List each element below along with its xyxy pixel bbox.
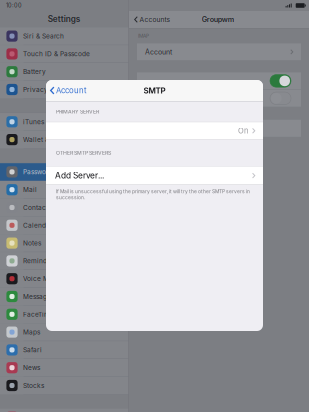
button[interactable]: Add Server... [46,167,263,185]
button[interactable]: Maps [0,323,128,341]
staticText: Siri & Search [23,32,64,40]
button[interactable]: Contacts [0,199,128,217]
button[interactable]: Privacy [0,81,128,99]
staticText: Account [56,86,87,95]
staticText: Calendar [23,221,52,229]
button[interactable]: Siri & Search [0,27,128,45]
staticText: Wallet & Apple Pay [23,136,84,143]
button[interactable]: Notes [0,234,128,252]
staticText: Account [145,48,172,56]
staticText: Notes [23,239,41,247]
button[interactable]: iTunes & App Store [0,113,128,131]
staticText: SMTP [143,86,165,95]
button[interactable]: Mail [0,181,128,199]
staticText: Messages [23,292,54,300]
button[interactable]: Account [46,80,87,101]
staticText: Contacts [23,203,51,211]
staticText: News [23,364,40,372]
button[interactable]: Passwords & Accounts [0,163,128,181]
staticText: On [238,126,248,135]
staticText: Stocks [23,381,44,389]
staticText: Mail [23,186,37,194]
button[interactable]: Messages [0,288,128,306]
button[interactable]: Calendar [0,217,128,234]
staticText: Add Server... [55,171,104,181]
button[interactable]: Music [0,408,128,412]
button[interactable]: Voice Memos [0,270,128,288]
staticText: If Mail is unsuccessful using the primar… [56,188,250,200]
staticText: Settings [48,14,81,24]
staticText: Touch ID & Passcode [23,50,90,58]
button[interactable]: Accounts [129,11,170,28]
button[interactable]: Reminders [0,252,128,270]
button[interactable]: Safari [0,341,128,359]
staticText: Maps [23,328,40,336]
staticText: OTHER SMTP SERVERS [56,150,111,156]
staticText: 10:00 [6,2,22,9]
staticText: IMAP [138,33,149,39]
staticText: Passwords & Accounts [23,168,93,176]
button[interactable]: Touch ID & Passcode [0,45,128,63]
staticText: Safari [23,346,42,354]
button[interactable]: Wallet & Apple Pay [0,131,128,149]
staticText: Accounts [139,15,170,24]
button[interactable]: FaceTime [0,306,128,323]
button[interactable]: Stocks [0,377,128,395]
button[interactable]: News [0,359,128,377]
staticText: Reminders [23,257,56,265]
staticText: FaceTime [23,310,54,318]
staticText: PRIMARY SERVER [56,108,99,115]
staticText: Privacy [23,85,48,93]
staticText: Groupwm [202,15,234,24]
button[interactable]: On [46,122,263,139]
staticText: Battery [23,68,46,76]
staticText: Voice Memos [23,275,66,283]
button[interactable]: Battery [0,63,128,81]
staticText: iTunes & App Store [23,118,83,126]
